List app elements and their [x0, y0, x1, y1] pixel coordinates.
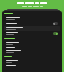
button[interactable] — [4, 26, 60, 31]
button[interactable] — [4, 46, 60, 49]
button[interactable] — [4, 49, 60, 54]
button[interactable] — [4, 64, 60, 67]
button[interactable] — [4, 16, 60, 21]
button[interactable]: Toggle off — [4, 21, 60, 26]
button[interactable] — [4, 59, 60, 64]
button[interactable] — [4, 41, 60, 46]
button[interactable]: Toggle on — [53, 32, 58, 35]
button[interactable]: Toggle on — [4, 31, 60, 36]
button[interactable]: Toggle off — [53, 22, 58, 25]
